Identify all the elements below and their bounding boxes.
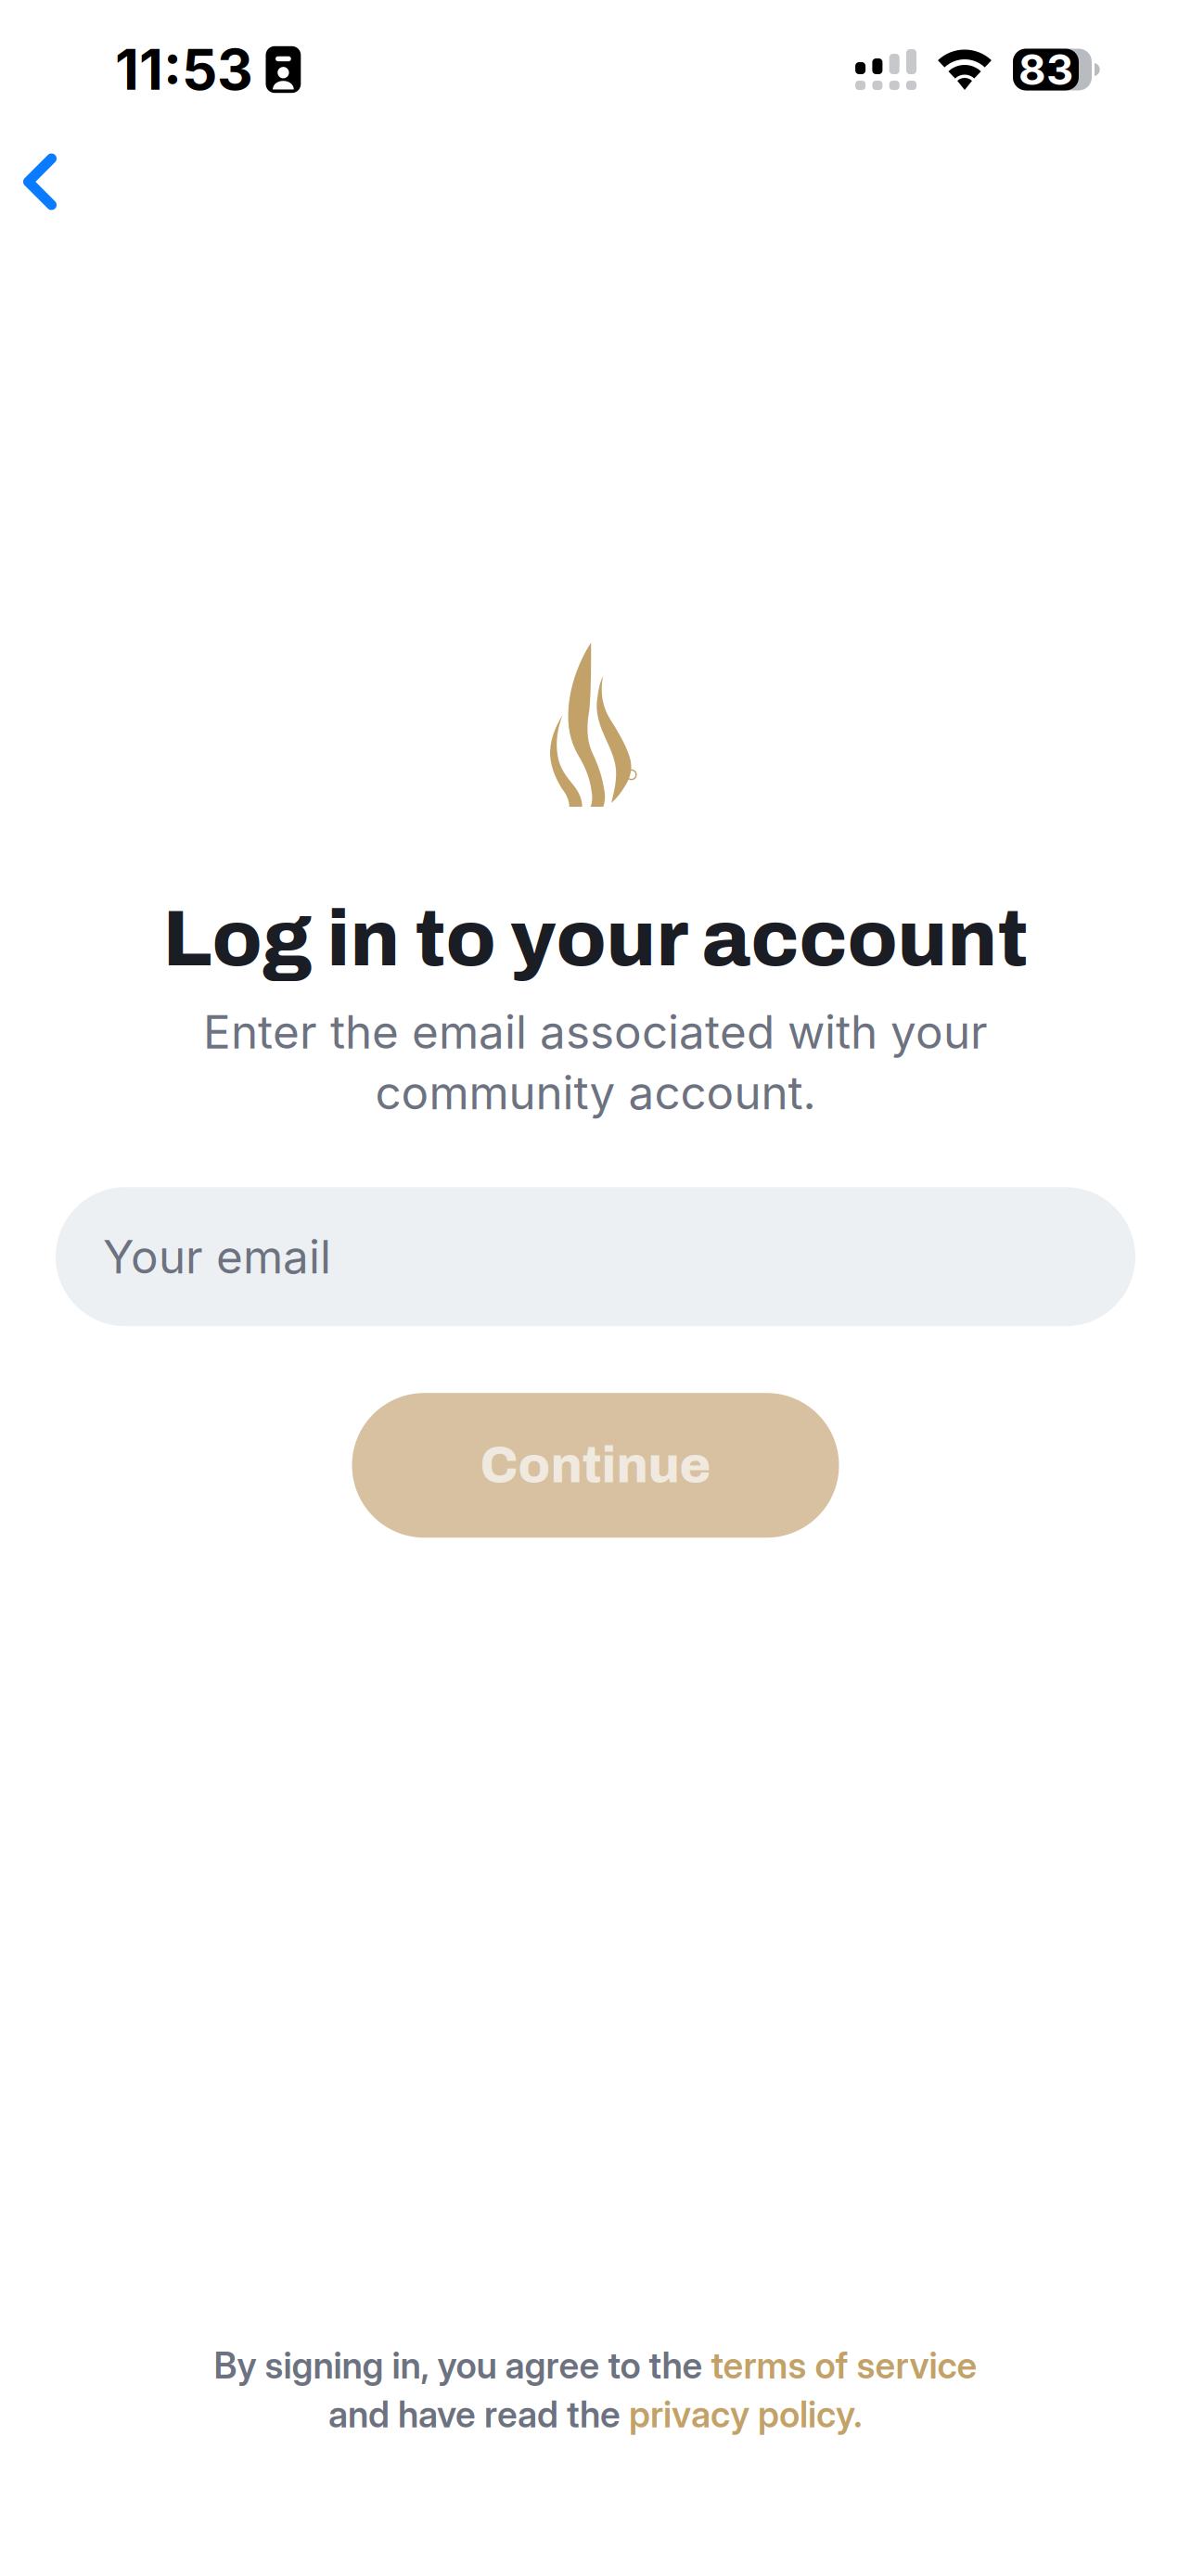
staticText: community account.	[375, 1065, 816, 1120]
staticText: Log in to your account	[163, 896, 1028, 982]
staticText: Continue	[480, 1438, 711, 1493]
button[interactable]: Back	[0, 149, 84, 246]
staticText: Your email	[103, 1229, 331, 1284]
staticText: terms of service	[711, 2344, 977, 2387]
staticText: privacy policy.	[629, 2393, 863, 2436]
staticText: By signing in, you agree to the	[214, 2344, 711, 2387]
button[interactable]: terms of service	[711, 2344, 977, 2387]
staticText: 11:53	[115, 36, 253, 103]
button[interactable]: Continue	[352, 1393, 839, 1538]
button[interactable]: privacy policy.	[629, 2393, 863, 2436]
staticText: and have read the	[328, 2393, 629, 2436]
staticText: Enter the email associated with your	[203, 1004, 988, 1059]
staticText: 83	[1018, 44, 1073, 95]
